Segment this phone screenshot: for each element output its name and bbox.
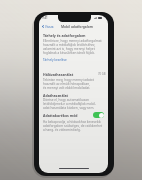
staticText: Tárhely és adatforgalom bbox=[43, 33, 86, 38]
button[interactable]: Tárhely kezelése bbox=[43, 58, 67, 62]
staticText: Adathasználat bbox=[43, 93, 69, 98]
staticText: 70 GB bbox=[98, 72, 106, 76]
staticText: Mobil adatforgalom bbox=[61, 24, 93, 28]
staticText: Hálózathasználat bbox=[43, 72, 74, 77]
button[interactable]: Back bbox=[41, 23, 55, 30]
staticText: Tárhely kezelése bbox=[43, 58, 67, 62]
staticText: Tekintse meg, hogy mennyi adatot használ… bbox=[43, 78, 105, 90]
staticText: Adattakarékos mód bbox=[43, 113, 78, 118]
staticText: Ellenőrizze, hogy mennyi adatforgalmat h… bbox=[43, 39, 105, 55]
staticText: 9:41 bbox=[42, 16, 48, 20]
button[interactable]: Adattakarékos mód bbox=[42, 110, 104, 120]
staticText: Vissza bbox=[45, 25, 54, 29]
staticText: Ha bekapcsolja, a hívásokhoz kevesebb ad… bbox=[43, 120, 105, 132]
staticText: Döntse el, hogy automatikusan letöltődje… bbox=[43, 98, 105, 110]
